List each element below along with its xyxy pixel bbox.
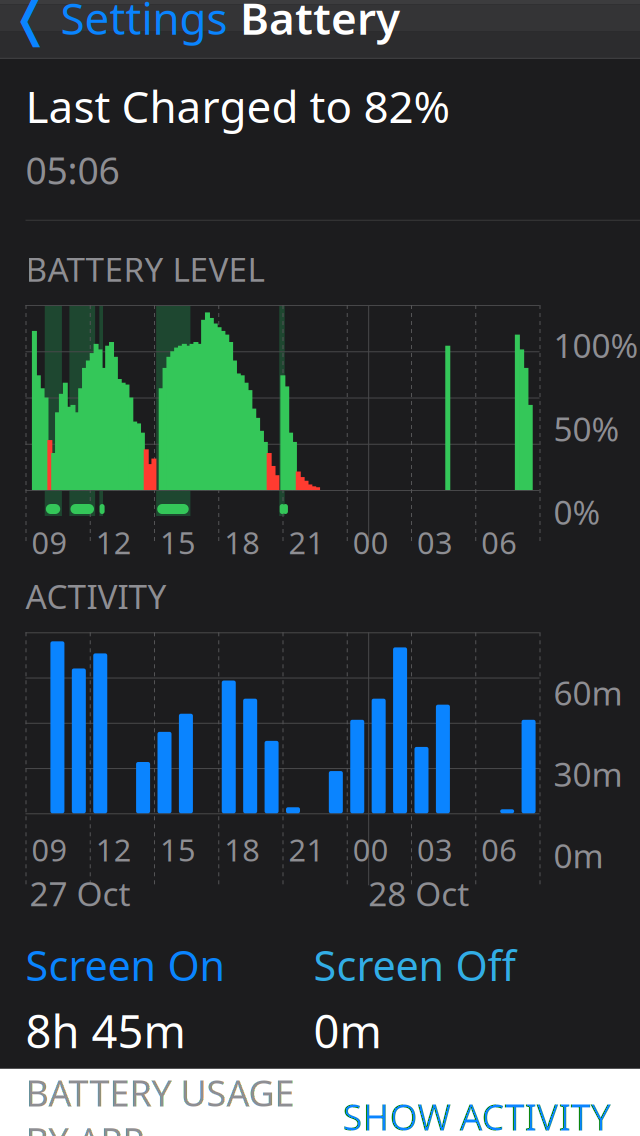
staticText: 100%	[553, 323, 638, 367]
staticText: 00	[353, 829, 389, 870]
staticText: 09	[31, 829, 67, 870]
button[interactable]: SHOW ACTIVITY	[338, 1086, 614, 1136]
staticText: 50%	[553, 406, 619, 451]
staticText: 21	[288, 522, 324, 563]
staticText: 06	[481, 522, 517, 563]
staticText: 18	[224, 522, 260, 563]
staticText: ACTIVITY	[25, 574, 166, 618]
staticText: 03	[417, 829, 453, 870]
staticText: 12	[96, 522, 132, 563]
staticText: 06	[481, 829, 517, 870]
staticText: 15	[160, 522, 196, 563]
staticText: 05:06	[25, 145, 119, 195]
staticText: 8h 45m	[25, 1000, 185, 1061]
staticText: 15	[160, 829, 196, 870]
staticText: 30m	[553, 752, 622, 796]
staticText: Screen On	[25, 937, 225, 992]
staticText: 18	[224, 829, 260, 870]
staticText: SHOW ACTIVITY	[342, 1092, 610, 1136]
staticText: 60m	[553, 670, 622, 715]
staticText: 03	[417, 522, 453, 563]
staticText: 0%	[553, 490, 600, 534]
staticText: 0m	[313, 1000, 381, 1061]
staticText: Settings	[60, 0, 227, 47]
staticText: 09	[31, 522, 67, 563]
staticText: 0m	[553, 833, 603, 877]
staticText: 12	[96, 829, 132, 870]
staticText: 27 Oct	[29, 871, 130, 916]
staticText: 28 Oct	[368, 871, 469, 916]
staticText: Battery	[240, 0, 400, 47]
staticText: Last Charged to 82%	[25, 77, 450, 135]
staticText: BATTERY USAGE BY APP	[25, 1069, 294, 1136]
staticText: 00	[353, 522, 389, 563]
staticText: Screen Off	[313, 937, 515, 992]
staticText: 21	[288, 829, 324, 870]
button[interactable]: ❬	[0, 0, 243, 55]
staticText: BATTERY LEVEL	[25, 247, 264, 291]
staticText: ❬	[9, 0, 51, 46]
